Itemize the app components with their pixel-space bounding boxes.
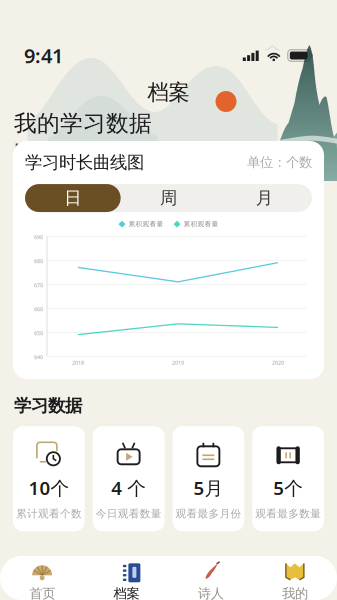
- staticText: 640: [34, 354, 43, 361]
- button[interactable]: 5月: [172, 426, 244, 531]
- staticText: 690: [34, 234, 43, 241]
- button[interactable]: 10个: [13, 426, 85, 531]
- button[interactable]: 档案: [84, 562, 168, 600]
- staticText: 单位：个数: [247, 154, 312, 171]
- staticText: 5个: [273, 475, 303, 500]
- button[interactable]: 5个: [252, 426, 324, 531]
- button[interactable]: 我的: [253, 562, 337, 600]
- button[interactable]: 档案: [0, 77, 337, 107]
- button[interactable]: 首页: [0, 562, 84, 600]
- staticText: 650: [34, 330, 43, 337]
- staticText: 月: [256, 187, 273, 209]
- staticText: 今日观看数量: [96, 507, 162, 520]
- staticText: 学习时长曲线图: [25, 152, 144, 173]
- staticText: 2019: [172, 359, 184, 366]
- staticText: 2020: [272, 359, 284, 366]
- button[interactable]: 诗人: [168, 562, 253, 600]
- staticText: 累积观看量: [128, 220, 163, 228]
- staticText: 累积观看量: [183, 220, 218, 228]
- staticText: 我的: [282, 585, 308, 600]
- staticText: 670: [34, 282, 43, 289]
- staticText: 日: [64, 187, 81, 209]
- staticText: 累计观看个数: [16, 507, 82, 520]
- staticText: 周: [160, 187, 177, 209]
- staticText: 学习数据: [14, 395, 82, 416]
- staticText: 档案: [147, 79, 189, 106]
- staticText: 680: [34, 258, 43, 265]
- staticText: 诗人: [198, 585, 224, 600]
- button[interactable]: 日: [25, 184, 121, 212]
- staticText: My learning data: [14, 138, 154, 161]
- staticText: 2018: [72, 359, 84, 366]
- staticText: 660: [34, 306, 43, 313]
- staticText: 首页: [29, 585, 55, 600]
- button[interactable]: 4 个: [93, 426, 165, 531]
- staticText: 观看最多月份: [175, 507, 241, 520]
- staticText: 9:41: [24, 42, 63, 69]
- button[interactable]: 月: [216, 184, 312, 212]
- staticText: 5月: [193, 475, 223, 500]
- staticText: 档案: [113, 585, 139, 600]
- staticText: 观看最多数量: [255, 507, 321, 520]
- staticText: 10个: [28, 475, 69, 500]
- button[interactable]: 周: [121, 184, 216, 212]
- staticText: 我的学习数据: [14, 109, 152, 137]
- staticText: 4 个: [111, 475, 146, 500]
